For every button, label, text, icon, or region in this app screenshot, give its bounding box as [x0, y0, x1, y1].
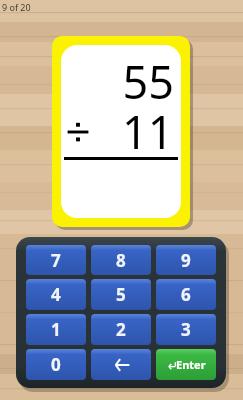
button[interactable]: Enter [156, 349, 216, 380]
button[interactable]: 4 [26, 279, 86, 310]
button[interactable]: Backspace [91, 349, 151, 380]
button[interactable]: 2 [91, 314, 151, 345]
staticText: 9 [181, 249, 191, 272]
staticText: 6 [181, 283, 191, 306]
button[interactable]: 9 [156, 245, 216, 275]
staticText: 3 [181, 318, 191, 341]
staticText: 11 [122, 101, 174, 162]
staticText: 8 [116, 249, 126, 272]
staticText: 7 [51, 249, 61, 272]
staticText: 0 [51, 353, 61, 376]
button[interactable]: 1 [26, 314, 86, 345]
staticText: 1 [51, 318, 61, 341]
staticText: Enter [176, 357, 206, 372]
button[interactable]: 3 [156, 314, 216, 345]
button[interactable]: 6 [156, 279, 216, 310]
staticText: 55 [122, 51, 174, 112]
button[interactable]: 8 [91, 245, 151, 275]
staticText: 5 [116, 283, 126, 306]
button[interactable]: 5 [91, 279, 151, 310]
button[interactable]: 0 [26, 349, 86, 380]
staticText: 4 [51, 283, 61, 306]
button[interactable]: 7 [26, 245, 86, 275]
staticText: 2 [116, 318, 126, 341]
staticText: 9 of 20 [2, 1, 31, 13]
